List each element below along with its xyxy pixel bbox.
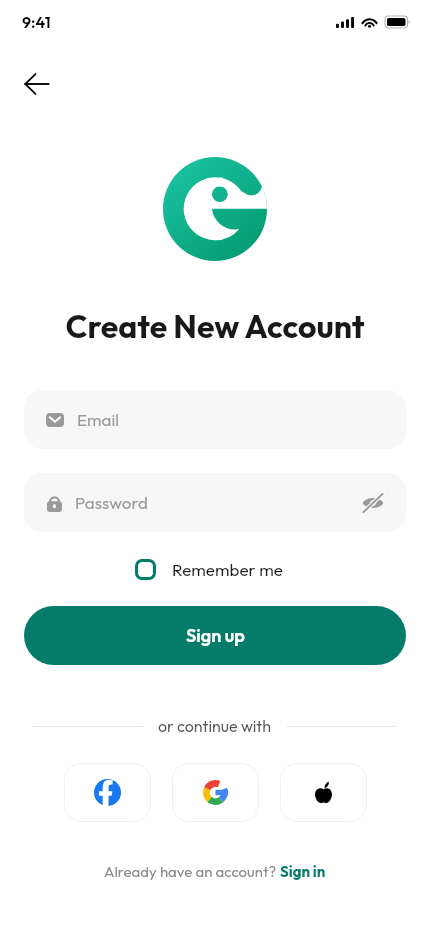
button[interactable]: Sign up: [24, 606, 406, 665]
staticText: Password: [75, 492, 148, 513]
staticText: or continue with: [158, 716, 272, 736]
button[interactable]: Sign in with Apple: [280, 763, 367, 822]
button[interactable]: Sign in: [280, 862, 326, 881]
button[interactable]: Sign in with Google: [172, 763, 259, 822]
button[interactable]: Back: [13, 60, 61, 108]
button[interactable]: Show password: [358, 488, 388, 518]
button[interactable]: Remember me: [135, 556, 283, 583]
staticText: Email: [77, 409, 120, 430]
staticText: Create New Account: [0, 306, 430, 346]
button[interactable]: Sign in with Facebook: [64, 763, 151, 822]
staticText: Sign in: [280, 862, 326, 881]
staticText: Sign up: [186, 624, 245, 647]
button[interactable]: Password: [24, 473, 406, 532]
staticText: Remember me: [172, 559, 283, 580]
staticText: Already have an account?: [104, 862, 280, 881]
button[interactable]: Email: [24, 390, 406, 449]
staticText: 9:41: [22, 12, 51, 32]
